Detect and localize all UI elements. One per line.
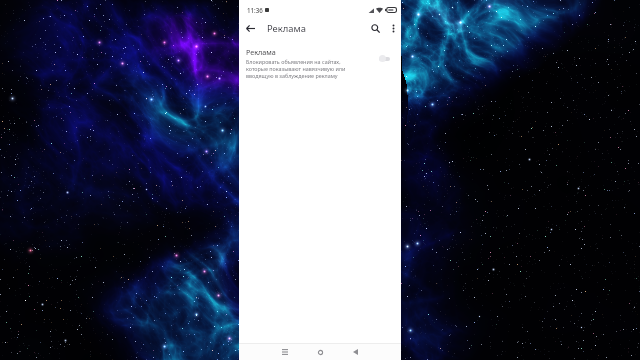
staticText: Реклама <box>246 47 276 57</box>
button[interactable]: More options <box>387 22 400 35</box>
staticText: Реклама <box>267 22 306 35</box>
button[interactable]: Toggle ad blocking <box>379 55 390 62</box>
button[interactable]: Recents <box>277 344 293 360</box>
button[interactable]: Back <box>347 344 363 360</box>
button[interactable]: Search <box>367 20 384 37</box>
staticText: Блокировать объявления на сайтах, которы… <box>246 58 346 79</box>
button[interactable]: Back <box>243 21 258 36</box>
staticText: 11:36 <box>247 6 263 14</box>
button[interactable]: Home <box>312 344 328 360</box>
button[interactable]: Реклама <box>239 47 401 79</box>
